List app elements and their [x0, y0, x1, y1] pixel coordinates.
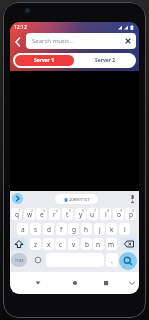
button[interactable]: Server 2: [75, 53, 136, 68]
staticText: 0: [132, 208, 135, 213]
staticText: y: [79, 210, 83, 219]
staticText: c: [59, 240, 63, 249]
staticText: e: [40, 210, 44, 219]
button[interactable]: g: [68, 223, 79, 235]
staticText: r: [53, 210, 56, 219]
button[interactable]: 208997107: [55, 194, 98, 204]
staticText: z: [34, 240, 38, 249]
button[interactable]: [12, 35, 24, 49]
staticText: 2: [31, 208, 34, 213]
staticText: v: [72, 240, 76, 249]
staticText: f: [60, 225, 63, 234]
staticText: h: [84, 225, 89, 234]
button[interactable]: [11, 238, 27, 250]
button[interactable]: w: [24, 208, 35, 220]
staticText: q: [15, 210, 19, 219]
staticText: 5: [69, 208, 72, 213]
button[interactable]: [126, 277, 138, 289]
staticText: s: [34, 225, 38, 234]
staticText: k: [110, 225, 114, 234]
staticText: ?123: [15, 258, 24, 263]
staticText: b: [85, 240, 89, 249]
button[interactable]: c: [55, 238, 66, 250]
button[interactable]: z: [30, 238, 41, 250]
button[interactable]: k: [106, 223, 117, 235]
button[interactable]: p: [125, 208, 136, 220]
staticText: o: [117, 210, 121, 219]
button[interactable]: d: [43, 223, 54, 235]
button[interactable]: n: [93, 238, 104, 250]
staticText: w: [27, 210, 33, 219]
staticText: a: [21, 225, 25, 234]
staticText: 1: [18, 208, 21, 213]
button[interactable]: [34, 256, 42, 264]
button[interactable]: r: [49, 208, 60, 220]
button[interactable]: v: [68, 238, 79, 250]
staticText: p: [129, 210, 133, 219]
button[interactable]: a: [17, 223, 28, 235]
staticText: i: [105, 210, 107, 219]
button[interactable]: m: [106, 238, 117, 250]
staticText: 8: [107, 208, 110, 213]
button[interactable]: .: [106, 253, 118, 267]
button[interactable]: b: [81, 238, 92, 250]
staticText: 6: [82, 208, 85, 213]
button[interactable]: j: [94, 223, 105, 235]
button[interactable]: ?123: [11, 253, 27, 267]
button[interactable]: f: [56, 223, 67, 235]
button[interactable]: [12, 193, 23, 204]
staticText: .: [111, 256, 113, 265]
button[interactable]: s: [30, 223, 41, 235]
button[interactable]: e: [36, 208, 47, 220]
button[interactable]: [32, 277, 44, 289]
button[interactable]: i: [100, 208, 111, 220]
staticText: Server 1: [34, 57, 55, 64]
button[interactable]: [100, 277, 112, 289]
staticText: 3: [43, 208, 46, 213]
button[interactable]: o: [113, 208, 124, 220]
staticText: d: [47, 225, 51, 234]
staticText: u: [90, 210, 95, 219]
button[interactable]: y: [75, 208, 86, 220]
button[interactable]: [69, 277, 81, 289]
button[interactable]: q: [11, 208, 22, 220]
staticText: 7: [94, 208, 97, 213]
staticText: 12:12: [14, 24, 27, 31]
button[interactable]: l: [119, 223, 130, 235]
staticText: x: [47, 240, 51, 249]
button[interactable]: Search music...: [26, 33, 136, 49]
button[interactable]: [121, 238, 138, 250]
staticText: 208997107: [69, 197, 90, 202]
staticText: 9: [120, 208, 123, 213]
staticText: 4: [56, 208, 59, 213]
staticText: m: [108, 240, 115, 249]
button[interactable]: u: [87, 208, 98, 220]
staticText: t: [66, 210, 69, 219]
staticText: Server 2: [95, 57, 116, 64]
button[interactable]: Server 1: [15, 55, 74, 66]
button[interactable]: [119, 252, 137, 270]
staticText: Search music...: [32, 37, 74, 45]
button[interactable]: t: [62, 208, 73, 220]
staticText: n: [96, 240, 101, 249]
button[interactable]: x: [43, 238, 54, 250]
button[interactable]: [129, 194, 136, 204]
staticText: l: [124, 225, 126, 234]
staticText: g: [72, 225, 76, 234]
button[interactable]: h: [81, 223, 92, 235]
staticText: j: [99, 225, 101, 234]
